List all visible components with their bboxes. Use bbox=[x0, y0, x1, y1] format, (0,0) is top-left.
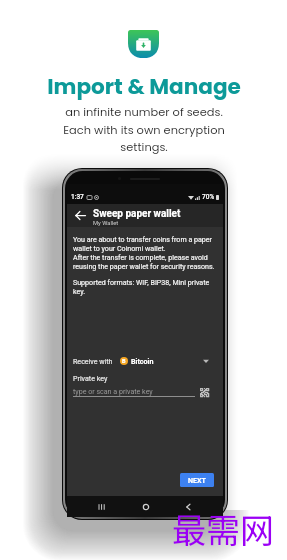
staticText: Bitcoin bbox=[131, 357, 154, 365]
staticText: My Wallet bbox=[93, 220, 119, 227]
button[interactable]: NEXT bbox=[180, 473, 214, 487]
staticText: B bbox=[122, 358, 126, 364]
staticText: type or scan a private key bbox=[73, 387, 153, 395]
button[interactable]: Back bbox=[72, 207, 89, 224]
staticText: 70% bbox=[202, 193, 215, 201]
staticText: NEXT bbox=[188, 476, 206, 484]
button[interactable]: Home bbox=[124, 496, 167, 517]
staticText: Supported formats: WIF, BIP38, Mini priv… bbox=[73, 278, 210, 296]
staticText: Private key bbox=[73, 374, 108, 382]
staticText: an infinite number of seeds. Each with i… bbox=[63, 104, 225, 155]
staticText: After the transfer is complete, please a… bbox=[73, 253, 215, 271]
staticText: Receive with bbox=[73, 357, 113, 365]
staticText: 最需网 bbox=[172, 504, 274, 553]
button[interactable]: Receive with bbox=[67, 354, 223, 368]
button[interactable]: Back bbox=[167, 496, 210, 517]
staticText: Import & Manage bbox=[47, 71, 241, 101]
staticText: You are about to transfer coins from a p… bbox=[73, 235, 212, 253]
staticText: 1:37 bbox=[71, 193, 84, 201]
button[interactable]: Recent apps bbox=[80, 496, 124, 517]
button[interactable]: Scan QR code bbox=[200, 388, 209, 397]
staticText: Sweep paper wallet bbox=[93, 208, 181, 220]
